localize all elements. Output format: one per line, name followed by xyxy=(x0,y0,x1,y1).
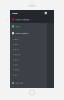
staticText: Video xyxy=(13,43,18,46)
staticText: News xyxy=(13,38,19,41)
button[interactable]: Match Centre xyxy=(10,30,47,37)
staticText: Fixtures xyxy=(13,53,21,56)
staticText: Stats xyxy=(13,73,18,76)
button[interactable]: Fixtures xyxy=(10,52,47,57)
button[interactable]: Tables xyxy=(10,47,47,52)
button[interactable]: Results xyxy=(10,57,47,62)
staticText: Tables xyxy=(13,48,19,51)
staticText: Results xyxy=(13,58,20,61)
button[interactable]: News xyxy=(10,37,47,42)
staticText: Match Centre xyxy=(15,32,28,35)
staticText: Watch Football xyxy=(15,18,30,21)
button[interactable]: Stats xyxy=(10,72,47,77)
button[interactable]: Video xyxy=(10,42,47,47)
staticText: Players xyxy=(13,68,20,71)
staticText: Menu xyxy=(12,11,17,15)
button[interactable]: Players xyxy=(10,67,47,72)
button[interactable]: Sports xyxy=(10,23,47,30)
button[interactable]: Clubs xyxy=(10,62,47,67)
button[interactable]: Settings xyxy=(10,80,47,86)
staticText: Clubs xyxy=(13,63,18,66)
staticText: Settings xyxy=(15,81,23,84)
staticText: Sports xyxy=(15,25,21,28)
